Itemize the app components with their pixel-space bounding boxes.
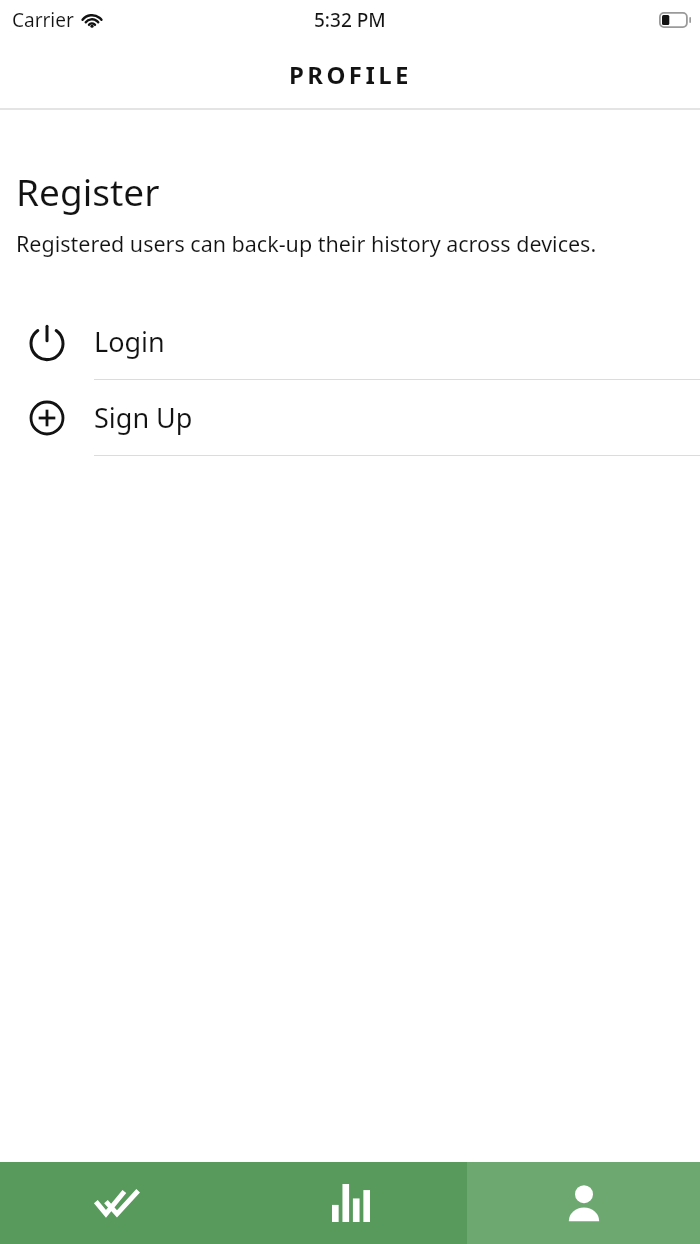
button[interactable]: Statistics [234,1162,467,1244]
staticText: PROFILE [289,58,412,91]
button[interactable]: Profile [467,1162,700,1244]
staticText: Sign Up [94,399,193,436]
staticText: 5:32 PM [314,7,386,33]
staticText: Register [16,166,160,216]
button[interactable]: Login [0,304,700,380]
button[interactable]: Tasks [0,1162,234,1244]
staticText: Registered users can back-up their histo… [16,229,597,258]
staticText: Carrier [12,7,74,33]
button[interactable]: Sign Up [0,380,700,456]
staticText: Login [94,323,165,360]
